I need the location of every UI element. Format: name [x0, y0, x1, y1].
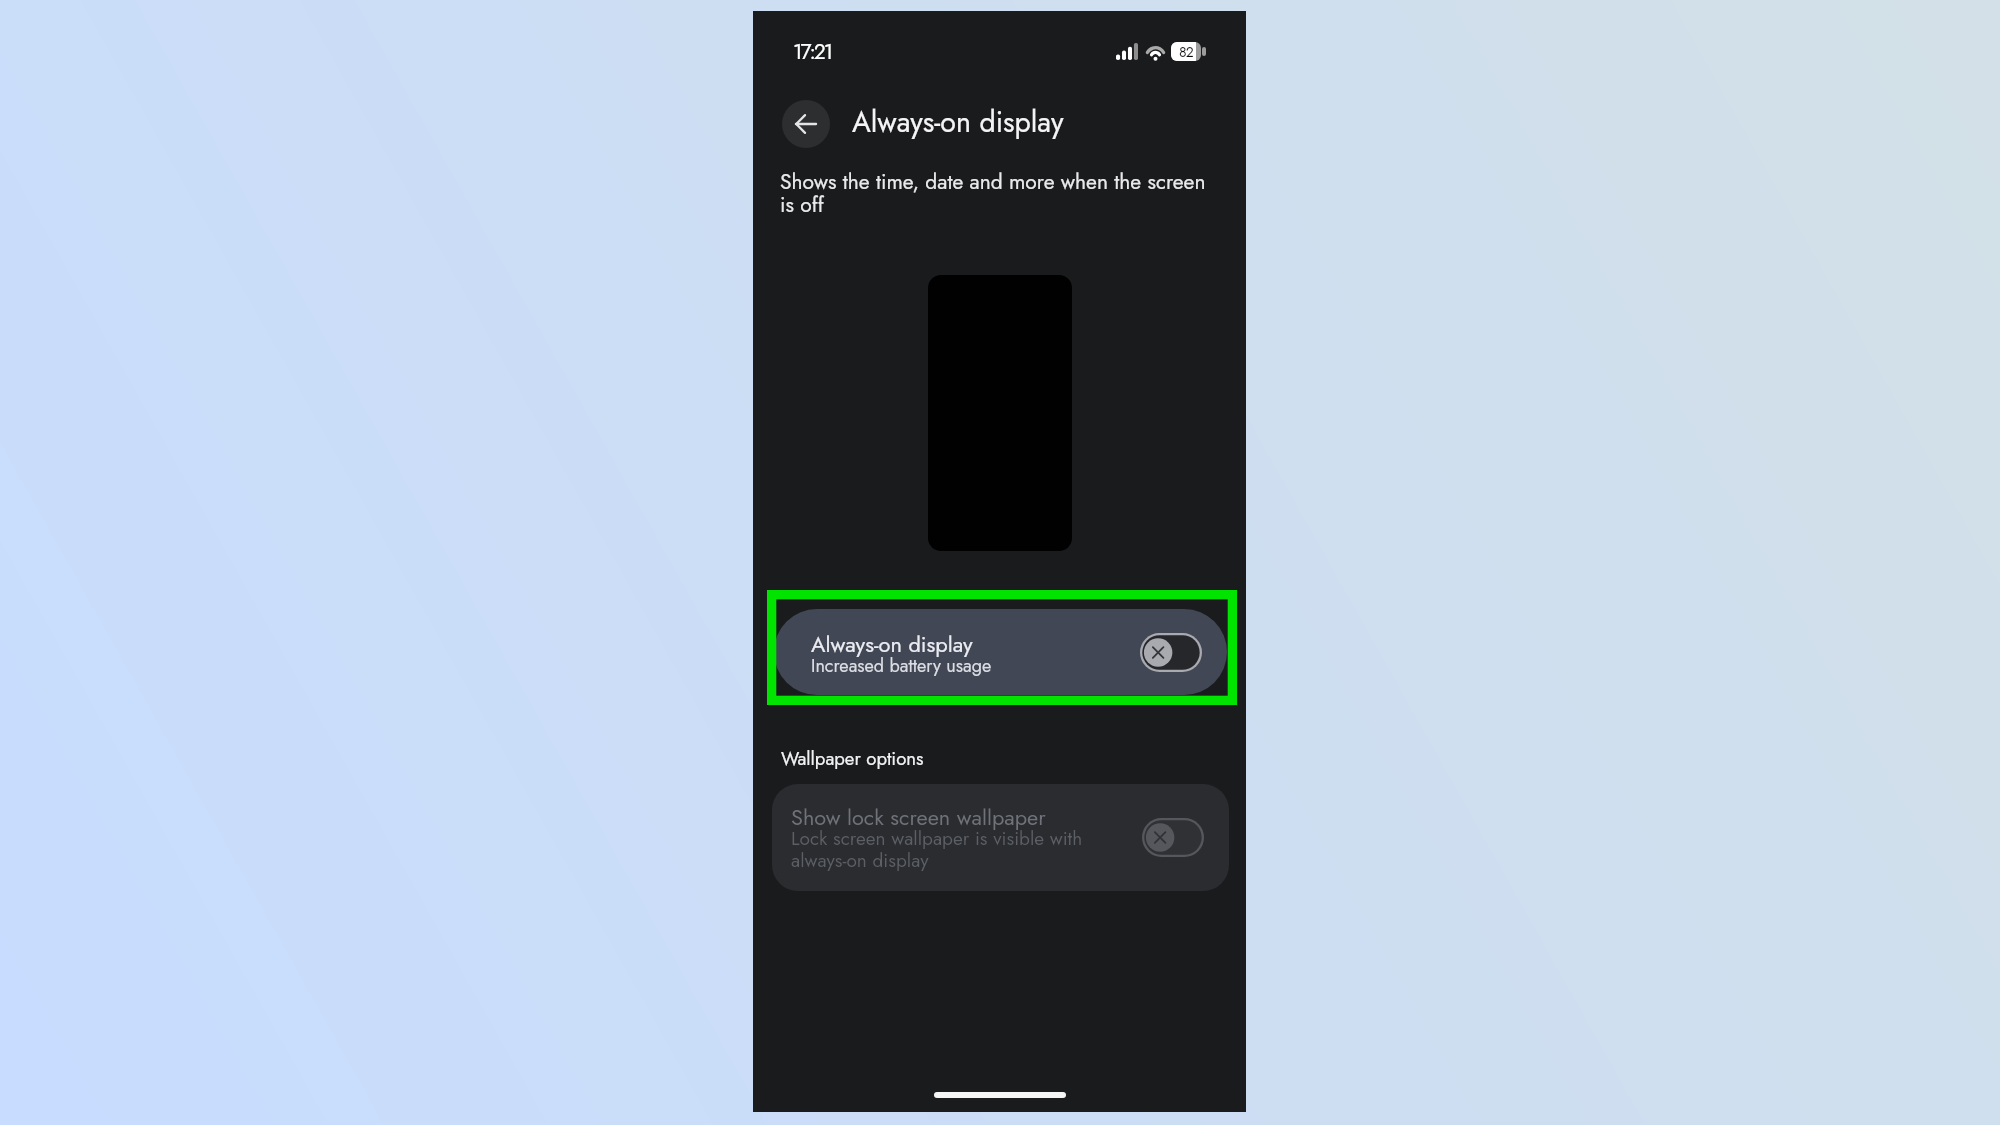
staticText: Shows the time, date and more when the s…: [780, 167, 1215, 220]
staticText: Lock screen wallpaper is visible with al…: [791, 825, 1101, 874]
staticText: Wallpaper options: [781, 745, 924, 772]
button[interactable]: Show lock screen wallpaper: [772, 784, 1229, 891]
staticText: Show lock screen wallpaper: [791, 802, 1046, 833]
button[interactable]: Toggle off: [1142, 818, 1204, 857]
staticText: Always-on display: [811, 629, 973, 661]
button[interactable]: Back: [782, 100, 830, 148]
staticText: 17:21: [793, 37, 832, 67]
button[interactable]: Always-on display: [774, 609, 1227, 695]
staticText: Always-on display: [852, 102, 1064, 143]
staticText: Increased battery usage: [811, 653, 992, 679]
staticText: 82: [1179, 42, 1193, 61]
button[interactable]: Toggle off: [1140, 633, 1202, 672]
